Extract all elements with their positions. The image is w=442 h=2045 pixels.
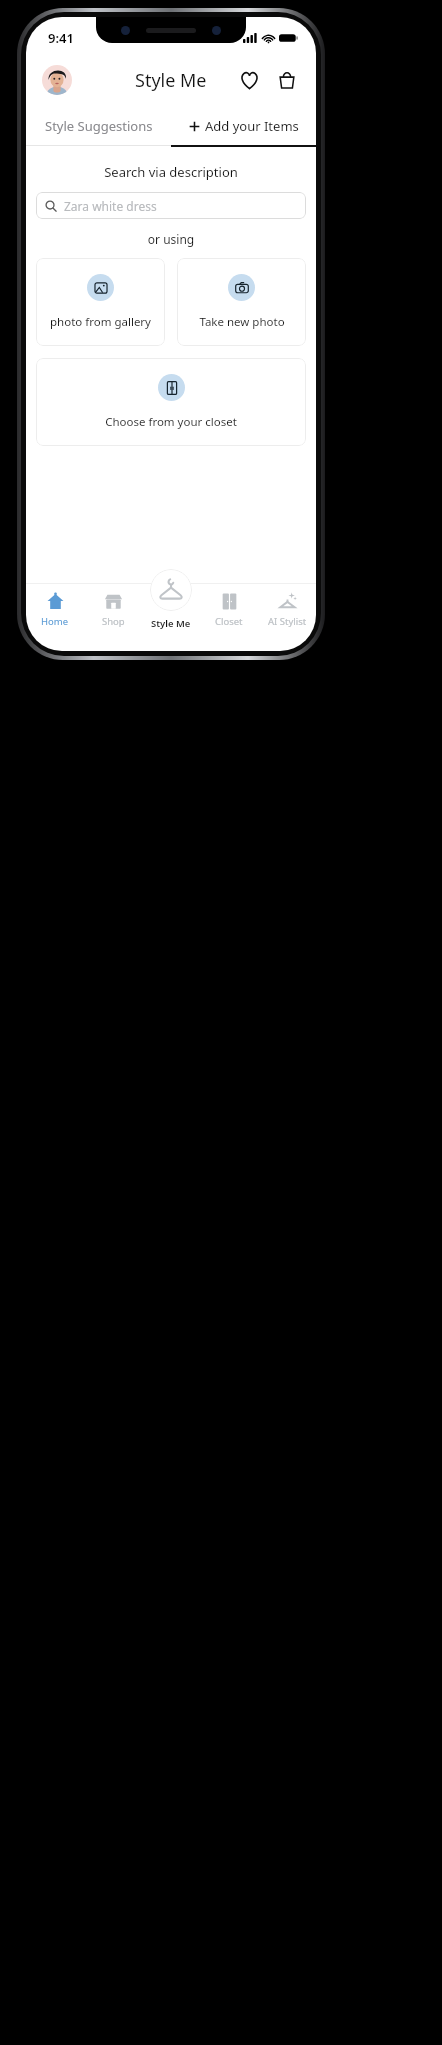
button[interactable]: Closet	[200, 591, 258, 628]
button[interactable]: Shopping bag	[272, 65, 302, 95]
staticText: Add your Items	[205, 117, 299, 135]
staticText: or using	[26, 231, 316, 247]
staticText: Home	[41, 615, 69, 628]
staticText: 9:41	[48, 29, 74, 47]
button[interactable]: Add your Items	[171, 107, 316, 145]
staticText: Style Me	[135, 68, 207, 93]
staticText: Choose from your closet	[105, 414, 237, 430]
staticText: Style Me	[151, 617, 191, 630]
staticText: Take new photo	[199, 314, 285, 330]
staticText: Closet	[215, 615, 243, 628]
staticText: Style Suggestions	[45, 117, 153, 135]
button[interactable]: Zara white dress	[36, 192, 306, 219]
button[interactable]: AI Stylist	[258, 591, 316, 628]
staticText: photo from gallery	[50, 314, 151, 330]
staticText: AI Stylist	[268, 615, 307, 628]
button[interactable]: photo from gallery	[36, 258, 165, 346]
button[interactable]: Style Suggestions	[26, 107, 171, 145]
button[interactable]: Style Me	[142, 591, 200, 630]
staticText: Shop	[102, 615, 125, 628]
button[interactable]: Take new photo	[177, 258, 306, 346]
button[interactable]: Profile	[42, 65, 72, 95]
staticText: Search via description	[26, 163, 316, 181]
button[interactable]: Shop	[84, 591, 142, 628]
button[interactable]: Favorites	[234, 65, 264, 95]
button[interactable]: Style Me	[150, 569, 192, 611]
button[interactable]: Home	[26, 591, 84, 628]
staticText: Zara white dress	[64, 198, 157, 214]
button[interactable]: Choose from your closet	[36, 358, 306, 446]
